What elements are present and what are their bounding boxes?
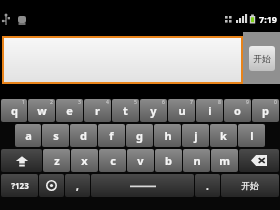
button[interactable]: s (42, 124, 69, 147)
button[interactable]: Shift (1, 149, 42, 172)
staticText: d (80, 128, 87, 143)
staticText: i (208, 103, 212, 118)
button[interactable]: x (71, 149, 98, 172)
staticText: 7 (190, 99, 193, 106)
button[interactable]: 开始 (221, 174, 279, 197)
staticText: p (262, 103, 269, 118)
button[interactable]: 开始 (249, 46, 275, 71)
button[interactable]: l (238, 124, 265, 147)
button[interactable]: Input settings (39, 174, 64, 197)
staticText: . (206, 179, 209, 193)
button[interactable]: y (140, 99, 167, 122)
button[interactable]: o (224, 99, 251, 122)
button[interactable]: d (70, 124, 97, 147)
staticText: 9 (246, 99, 249, 106)
button[interactable]: j (182, 124, 209, 147)
button[interactable]: u (168, 99, 195, 122)
button[interactable]: ?123 (1, 174, 38, 197)
staticText: t (123, 103, 128, 118)
staticText: m (219, 153, 230, 168)
staticText: n (193, 153, 201, 168)
staticText: u (178, 103, 186, 118)
staticText: k (220, 128, 227, 143)
button[interactable]: m (211, 149, 238, 172)
staticText: h (164, 128, 172, 143)
button[interactable]: b (155, 149, 182, 172)
staticText: 8 (218, 99, 221, 106)
button[interactable] (4, 38, 241, 82)
staticText: a (25, 128, 32, 143)
staticText: s (53, 128, 59, 143)
staticText: e (66, 103, 73, 118)
staticText: y (150, 103, 157, 118)
button[interactable]: n (183, 149, 210, 172)
button[interactable]: k (210, 124, 237, 147)
button[interactable]: e (56, 99, 83, 122)
button[interactable]: i (196, 99, 223, 122)
staticText: l (250, 128, 254, 143)
staticText: r (95, 103, 100, 118)
button[interactable]: p (252, 99, 279, 122)
staticText: 4 (106, 99, 109, 106)
staticText: 7:19 (259, 13, 277, 25)
button[interactable]: z (43, 149, 70, 172)
staticText: g (136, 128, 143, 143)
staticText: 2 (50, 99, 53, 106)
button[interactable]: , (65, 174, 90, 197)
button[interactable]: v (127, 149, 154, 172)
button[interactable]: Delete (239, 149, 279, 172)
staticText: w (37, 103, 47, 118)
button[interactable]: w (28, 99, 55, 122)
staticText: x (81, 153, 88, 168)
staticText: v (137, 153, 144, 168)
staticText: ?123 (11, 180, 29, 191)
staticText: z (54, 153, 60, 168)
staticText: j (194, 128, 198, 143)
staticText: , (76, 179, 79, 193)
button[interactable]: r (84, 99, 111, 122)
button[interactable]: a (15, 124, 41, 147)
button[interactable]: . (195, 174, 220, 197)
staticText: o (234, 103, 241, 118)
staticText: 6 (162, 99, 165, 106)
staticText: 5 (134, 99, 137, 106)
staticText: 3 (78, 99, 81, 106)
button[interactable]: c (99, 149, 126, 172)
button[interactable]: Space (91, 174, 194, 197)
staticText: 开始 (253, 53, 271, 64)
staticText: 1 (22, 99, 25, 106)
staticText: f (109, 128, 114, 143)
button[interactable]: q (1, 99, 27, 122)
staticText: c (110, 153, 116, 168)
button[interactable]: g (126, 124, 153, 147)
button[interactable]: h (154, 124, 181, 147)
button[interactable]: t (112, 99, 139, 122)
staticText: 开始 (241, 180, 259, 191)
staticText: q (11, 103, 18, 118)
staticText: 0 (274, 99, 277, 106)
button[interactable]: f (98, 124, 125, 147)
staticText: b (165, 153, 172, 168)
